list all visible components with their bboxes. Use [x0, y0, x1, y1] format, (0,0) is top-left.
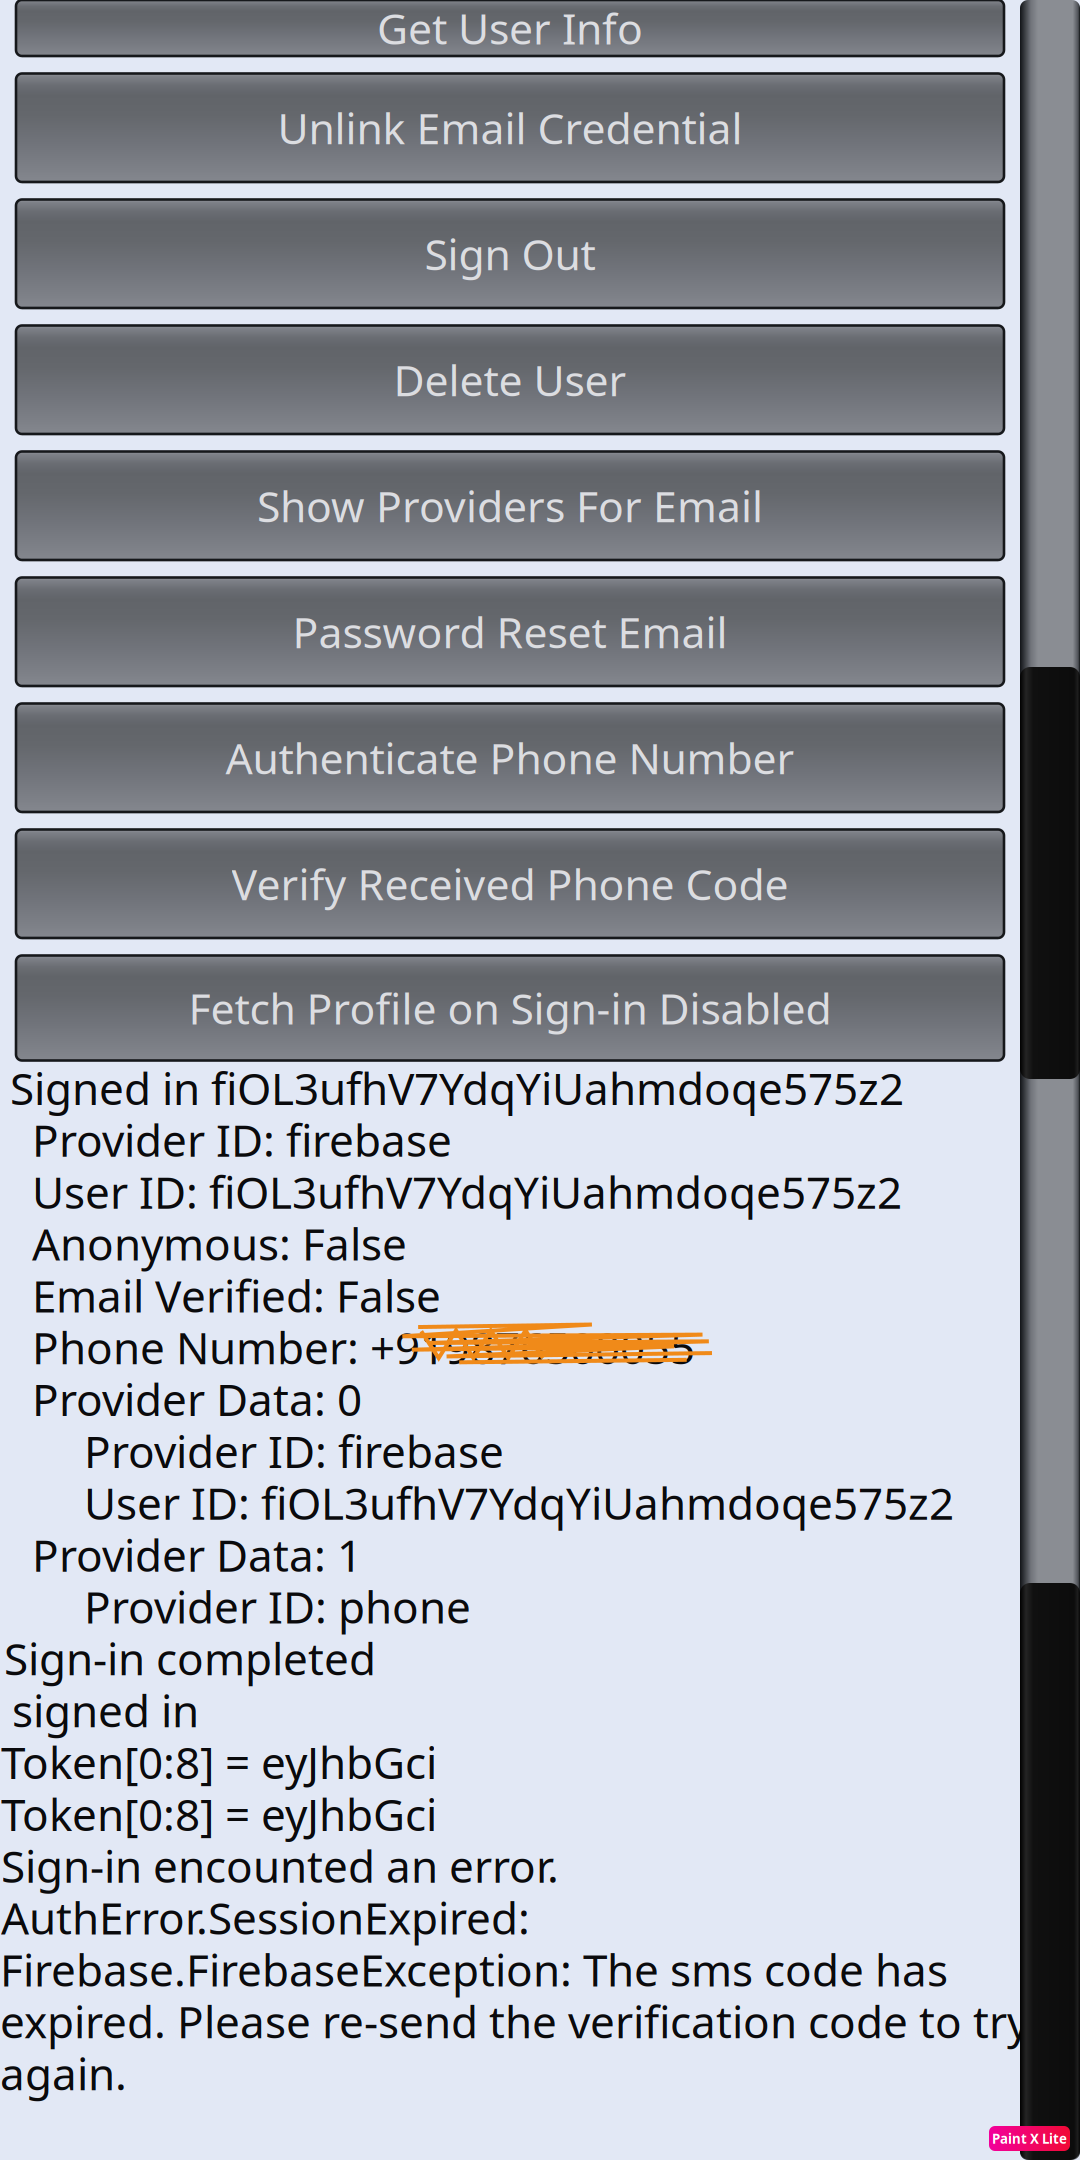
staticText: expired. Please re-send the verification…: [0, 1992, 1029, 2050]
button[interactable]: Fetch Profile on Sign-in Disabled: [16, 955, 1004, 1060]
staticText: Email Verified: False: [32, 1266, 441, 1324]
staticText: User ID: fiOL3ufhV7YdqYiUahmdoqe575z2: [84, 1473, 954, 1532]
staticText: Signed in fiOL3ufhV7YdqYiUahmdoqe575z2: [10, 1059, 904, 1117]
staticText: Authenticate Phone Number: [225, 729, 794, 786]
staticText: Delete User: [393, 351, 626, 408]
button[interactable]: Show Providers For Email: [16, 451, 1004, 560]
staticText: Sign-in completed: [4, 1629, 376, 1687]
staticText: User ID: fiOL3ufhV7YdqYiUahmdoqe575z2: [32, 1162, 902, 1221]
button[interactable]: Sign Out: [16, 199, 1004, 308]
staticText: Anonymous: False: [32, 1214, 407, 1273]
staticText: Paint X Lite: [992, 2130, 1067, 2147]
staticText: Provider ID: firebase: [32, 1111, 452, 1169]
staticText: Provider Data: 0: [32, 1370, 362, 1428]
button[interactable]: Get User Info: [16, 0, 1004, 56]
staticText: Password Reset Email: [292, 603, 727, 660]
button[interactable]: Delete User: [16, 325, 1004, 434]
staticText: Show Providers For Email: [257, 477, 763, 534]
staticText: Verify Received Phone Code: [231, 855, 788, 912]
button[interactable]: Unlink Email Credential: [16, 73, 1004, 182]
button[interactable]: Verify Received Phone Code: [16, 829, 1004, 938]
staticText: Fetch Profile on Sign-in Disabled: [188, 980, 831, 1036]
staticText: Firebase.FirebaseException: The sms code…: [0, 1940, 948, 1999]
staticText: signed in: [12, 1681, 199, 1739]
staticText: AuthError.SessionExpired:: [1, 1888, 530, 1947]
staticText: again.: [0, 2044, 127, 2102]
staticText: Token[0:8] = eyJhbGci: [1, 1733, 437, 1791]
staticText: Provider ID: phone: [84, 1577, 471, 1636]
staticText: Sign Out: [424, 225, 595, 282]
staticText: Unlink Email Credential: [277, 99, 742, 156]
button[interactable]: Password Reset Email: [16, 577, 1004, 686]
staticText: Provider ID: firebase: [84, 1422, 504, 1480]
staticText: Get User Info: [377, 0, 643, 56]
staticText: Phone Number: +919876500055: [32, 1318, 695, 1376]
button[interactable]: Authenticate Phone Number: [16, 703, 1004, 812]
staticText: Provider Data: 1: [32, 1525, 362, 1584]
staticText: Token[0:8] = eyJhbGci: [1, 1785, 437, 1843]
staticText: Sign-in encounted an error.: [1, 1836, 559, 1895]
